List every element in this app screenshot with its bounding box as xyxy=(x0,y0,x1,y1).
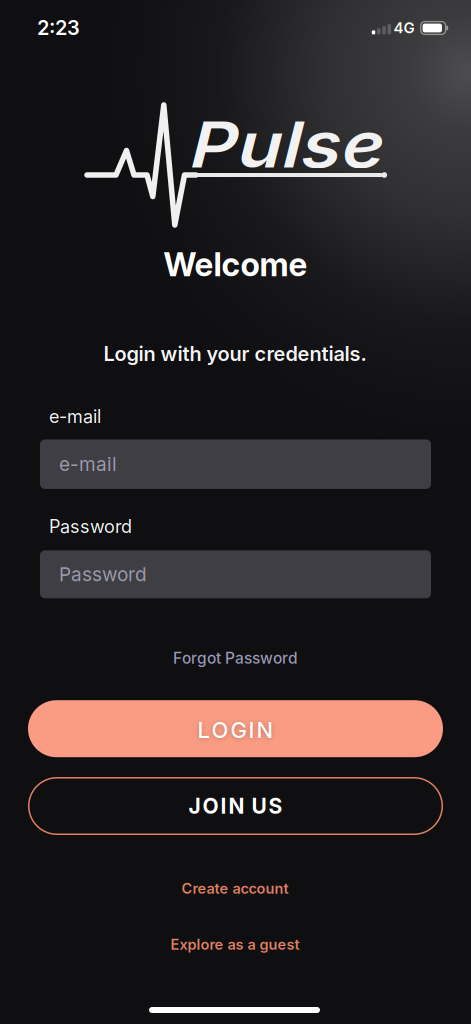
button[interactable]: Create account xyxy=(181,880,288,897)
staticText: e-mail xyxy=(59,453,117,476)
button[interactable]: Forgot Password xyxy=(173,649,298,667)
staticText: 4G xyxy=(393,19,414,37)
staticText: Login with your credentials. xyxy=(103,342,366,366)
staticText: 2:23 xyxy=(37,16,80,40)
button[interactable]: L O G I N xyxy=(28,700,443,757)
button[interactable]: Password xyxy=(40,550,431,598)
staticText: Forgot Password xyxy=(173,649,298,667)
staticText: Welcome xyxy=(163,245,307,284)
staticText: Pulse xyxy=(197,106,365,183)
staticText: Create account xyxy=(181,880,288,897)
staticText: Password xyxy=(49,516,132,537)
button[interactable]: J O I N U S xyxy=(28,777,443,835)
staticText: e-mail xyxy=(49,406,101,427)
staticText: Password xyxy=(59,563,147,586)
button[interactable]: Explore as a guest xyxy=(170,936,299,953)
button[interactable]: e-mail xyxy=(40,439,431,489)
staticText: J O I N U S xyxy=(188,793,282,819)
staticText: L O G I N xyxy=(197,717,273,743)
staticText: Explore as a guest xyxy=(170,936,299,953)
